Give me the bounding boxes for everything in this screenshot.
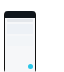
button[interactable]: Add bbox=[28, 64, 33, 69]
button[interactable] bbox=[5, 11, 35, 18]
